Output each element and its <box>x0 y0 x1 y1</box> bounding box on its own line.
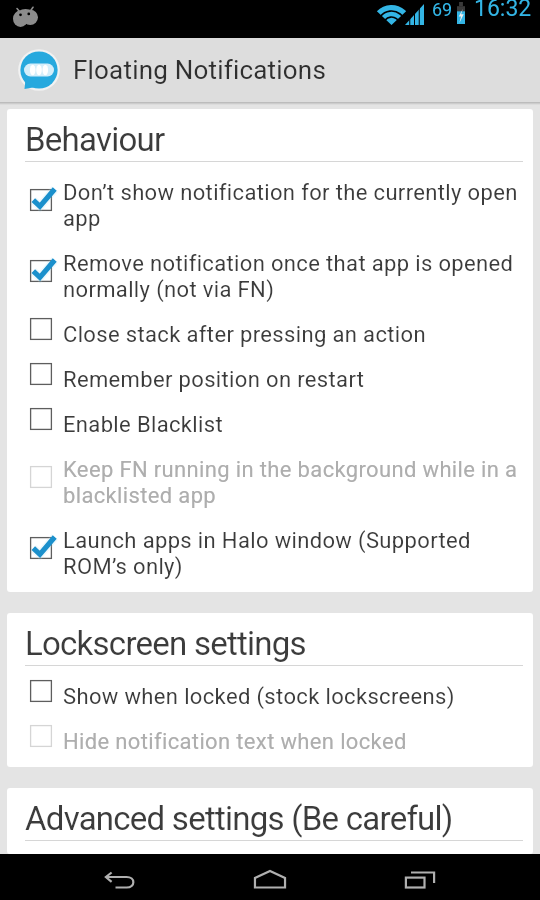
staticText: Don’t show notification for the currentl… <box>63 179 525 231</box>
staticText: Close stack after pressing an action <box>63 321 426 347</box>
staticText: 69 <box>432 0 453 20</box>
button[interactable]: Launch apps in Halo window (Supported RO… <box>7 510 533 581</box>
button[interactable]: Don’t show notification for the currentl… <box>7 162 533 233</box>
button[interactable]: Remove notification once that app is ope… <box>7 233 533 304</box>
staticText: Enable Blacklist <box>63 411 223 437</box>
button[interactable]: Remember position on restart <box>7 349 533 394</box>
staticText: Behaviour <box>25 120 165 159</box>
button[interactable]: Recent apps <box>345 854 495 900</box>
staticText: Hide notification text when locked <box>63 728 407 754</box>
staticText: Floating Notifications <box>73 55 327 85</box>
button[interactable]: Enable Blacklist <box>7 394 533 439</box>
button[interactable]: Hide notification text when locked <box>7 711 533 756</box>
staticText: Advanced settings (Be careful) <box>25 799 453 838</box>
button[interactable]: Show when locked (stock lockscreens) <box>7 666 533 711</box>
staticText: 16:32 <box>474 0 532 22</box>
staticText: Lockscreen settings <box>25 624 306 663</box>
staticText: Show when locked (stock lockscreens) <box>63 683 455 709</box>
staticText: Launch apps in Halo window (Supported RO… <box>63 527 525 579</box>
staticText: Remove notification once that app is ope… <box>63 250 525 302</box>
button[interactable]: Close stack after pressing an action <box>7 304 533 349</box>
button[interactable]: Keep FN running in the background while … <box>7 439 533 510</box>
button[interactable]: Home <box>195 854 345 900</box>
button[interactable]: Back <box>45 854 195 900</box>
staticText: Remember position on restart <box>63 366 365 392</box>
staticText: Keep FN running in the background while … <box>63 456 525 508</box>
button[interactable]: Floating Notifications <box>0 38 540 102</box>
